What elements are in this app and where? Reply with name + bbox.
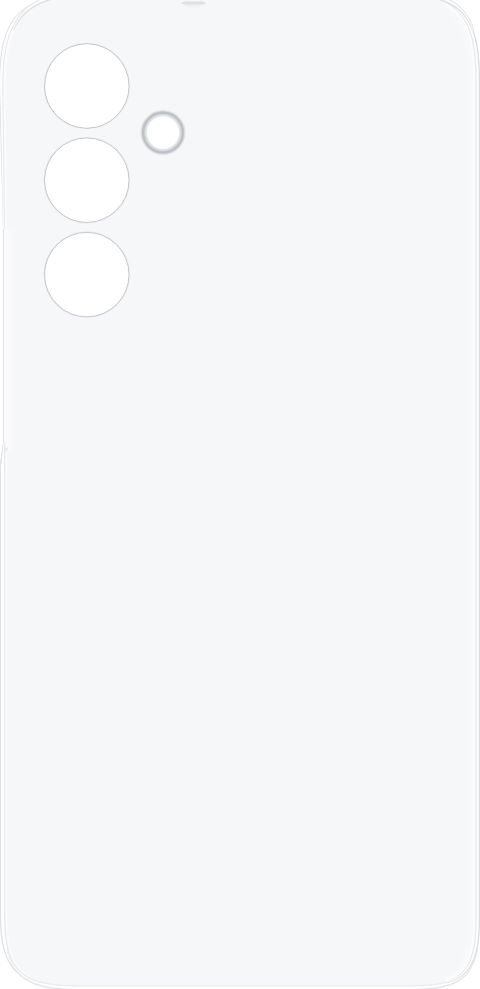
other: Clear phone case product photo: [0, 0, 480, 989]
